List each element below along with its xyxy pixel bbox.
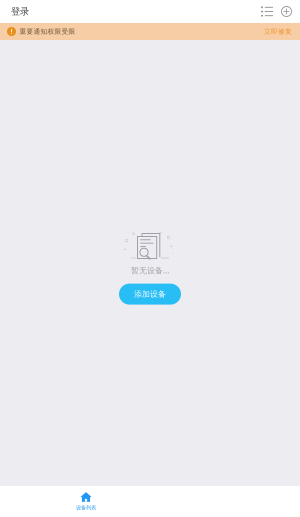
staticText: 暂无设备… [131,265,169,276]
staticText: 设备列表 [76,504,96,511]
staticText: 立即修复 [264,27,292,36]
button[interactable]: 添加设备 [277,1,296,22]
button[interactable]: 重要通知权限受限 [0,23,300,40]
staticText: 添加设备 [134,289,166,299]
button[interactable]: 列表 [257,1,277,22]
button[interactable]: 设备列表 [64,486,108,517]
button[interactable]: 添加设备 [119,284,181,305]
staticText: 登录 [11,6,29,17]
staticText: 重要通知权限受限 [19,27,75,36]
